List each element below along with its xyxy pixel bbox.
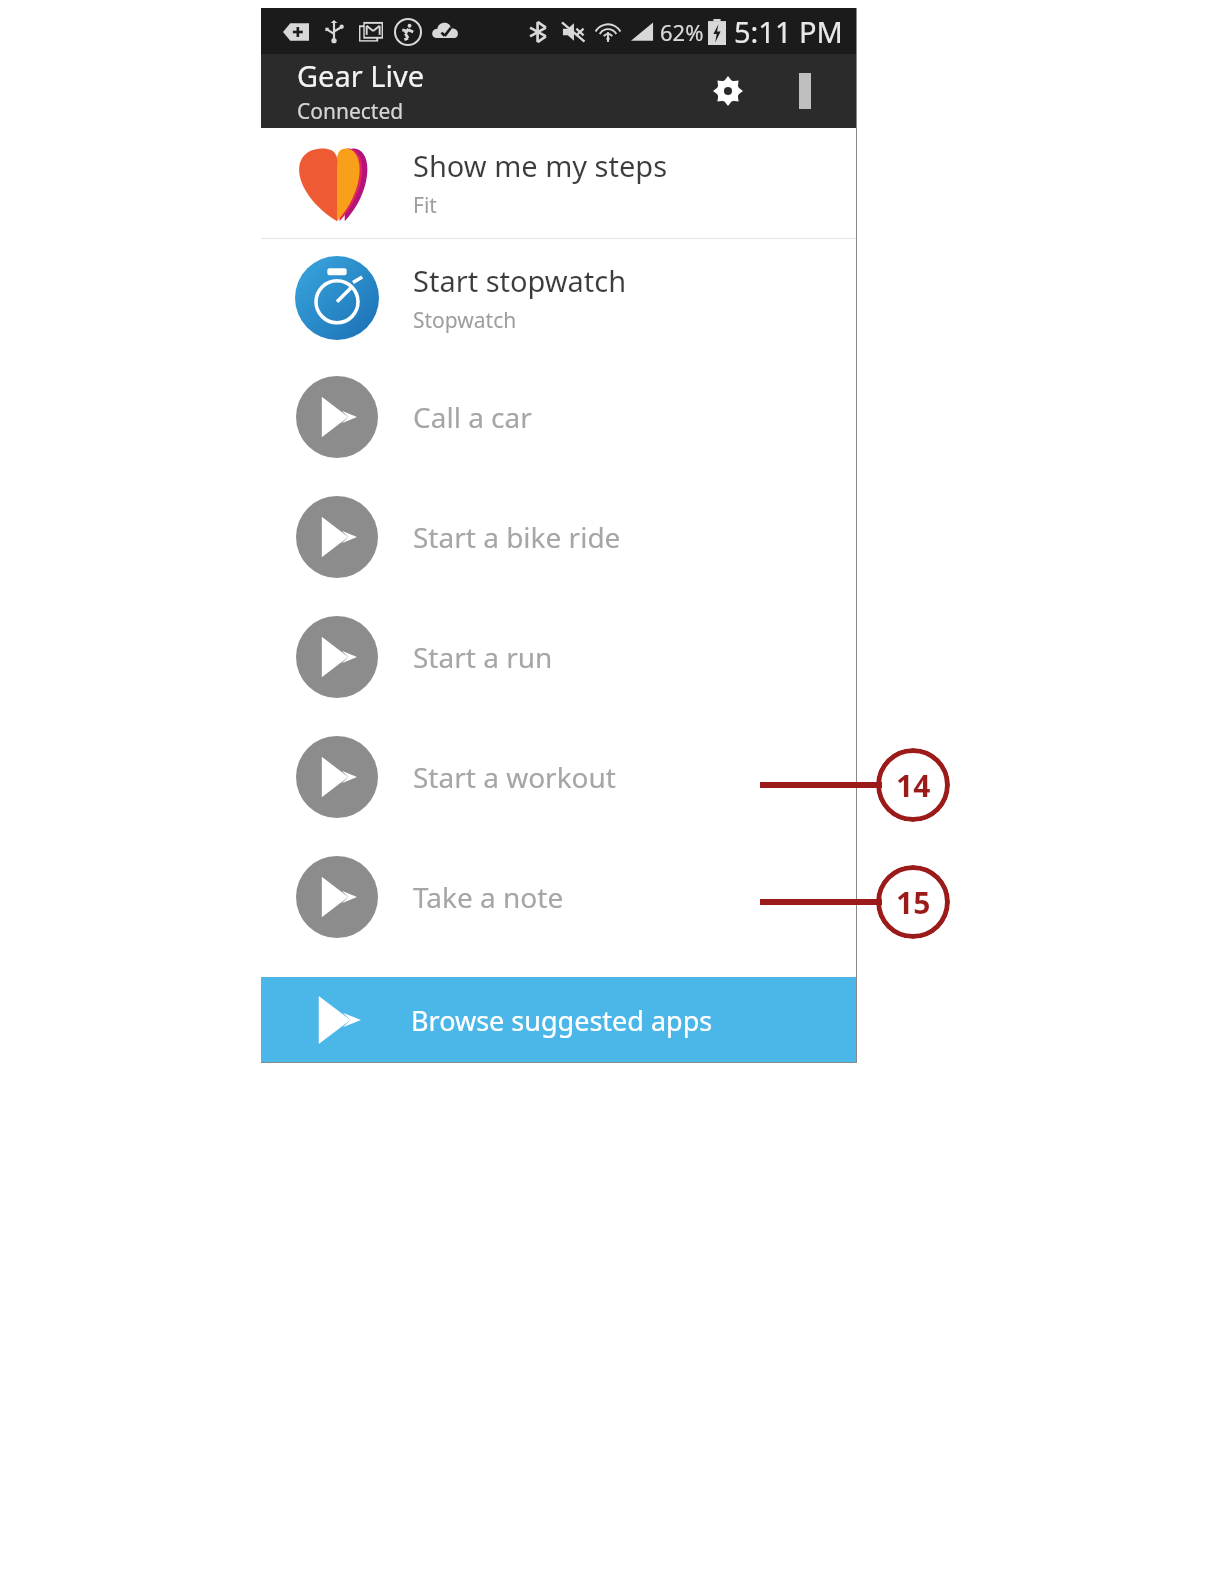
staticText: 5:11 PM [734,12,843,51]
staticText: 15 [896,882,931,923]
button[interactable]: Browse suggested apps [261,977,857,1063]
staticText: 14 [896,765,931,806]
staticText: Show me my steps [413,146,668,185]
staticText: Start a run [413,638,553,676]
staticText: Take a note [413,878,564,916]
button[interactable]: Take a note [261,837,857,957]
button[interactable]: Call a car [261,357,857,477]
staticText: Start stopwatch [413,261,627,300]
button[interactable]: Start a bike ride [261,477,857,597]
staticText: 62% [660,17,704,47]
staticText: Start a bike ride [413,518,621,556]
button[interactable]: Show me my steps [261,128,857,238]
staticText: Browse suggested apps [411,1002,713,1039]
button[interactable]: More options [778,64,832,118]
staticText: Start a workout [413,758,616,796]
button[interactable]: Start stopwatch [261,239,857,357]
staticText: Connected [297,97,404,126]
button[interactable]: Start a run [261,597,857,717]
staticText: Fit [413,191,437,220]
button[interactable]: Start a workout [261,717,857,837]
staticText: Call a car [413,398,532,436]
button[interactable]: Settings [701,64,755,118]
staticText: Gear Live [297,56,425,95]
staticText: Stopwatch [413,306,517,335]
